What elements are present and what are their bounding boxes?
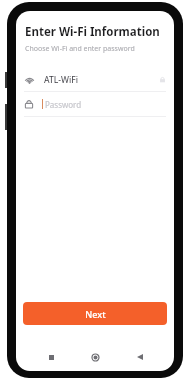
button[interactable]: Back bbox=[130, 347, 150, 367]
other: Secured network bbox=[159, 76, 166, 83]
staticText: Next bbox=[85, 308, 106, 320]
button[interactable]: Password bbox=[16, 92, 174, 116]
button[interactable]: Recent apps bbox=[41, 347, 61, 367]
button[interactable]: Next bbox=[23, 302, 167, 325]
staticText: Choose Wi-Fi and enter password bbox=[25, 44, 135, 54]
staticText: Enter Wi-Fi Information bbox=[25, 24, 160, 40]
staticText: ATL-WiFi bbox=[44, 74, 79, 86]
button[interactable]: Home bbox=[85, 347, 105, 367]
button[interactable]: ATL-WiFi bbox=[16, 68, 174, 91]
staticText: Password bbox=[45, 99, 82, 110]
